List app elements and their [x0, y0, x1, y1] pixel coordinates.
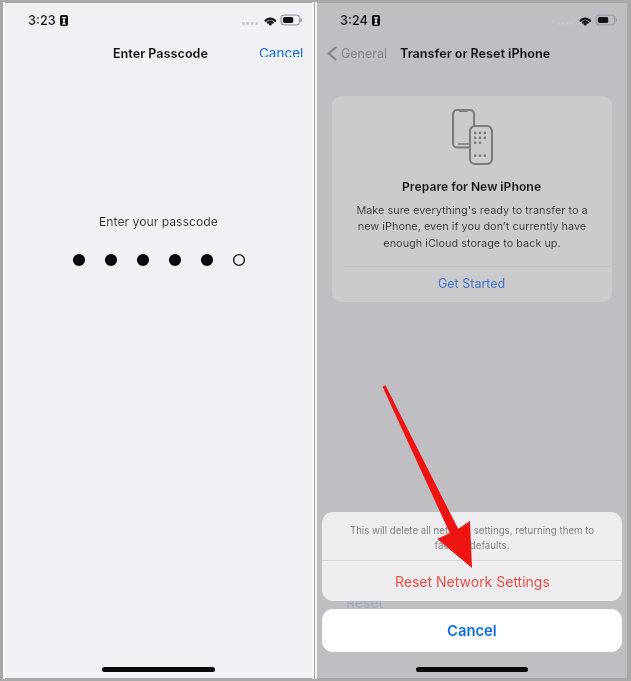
button[interactable]: General	[323, 43, 392, 64]
button[interactable]: Get Started	[332, 266, 612, 300]
staticText: Get Started	[438, 276, 506, 291]
staticText: Reset	[346, 594, 384, 611]
staticText: Prepare for New iPhone	[402, 179, 542, 194]
staticText: Cancel	[259, 45, 304, 57]
button[interactable]: Cancel	[248, 42, 312, 64]
staticText: Reset Network Settings	[395, 573, 550, 590]
button[interactable]: Cancel	[322, 609, 622, 652]
staticText: 3:24	[340, 13, 368, 28]
staticText: General	[341, 46, 388, 61]
staticText: Make sure everything's ready to transfer…	[332, 203, 612, 250]
staticText: 3:23	[28, 13, 56, 28]
staticText: Cancel	[447, 622, 497, 640]
staticText: Enter your passcode	[99, 214, 218, 229]
other: Annotation arrow	[0, 0, 631, 681]
staticText: Transfer or Reset iPhone	[400, 46, 551, 61]
button[interactable]: Reset Network Settings	[322, 561, 622, 601]
staticText: Enter Passcode	[113, 46, 208, 61]
staticText: This will delete all network settings, r…	[322, 525, 622, 551]
